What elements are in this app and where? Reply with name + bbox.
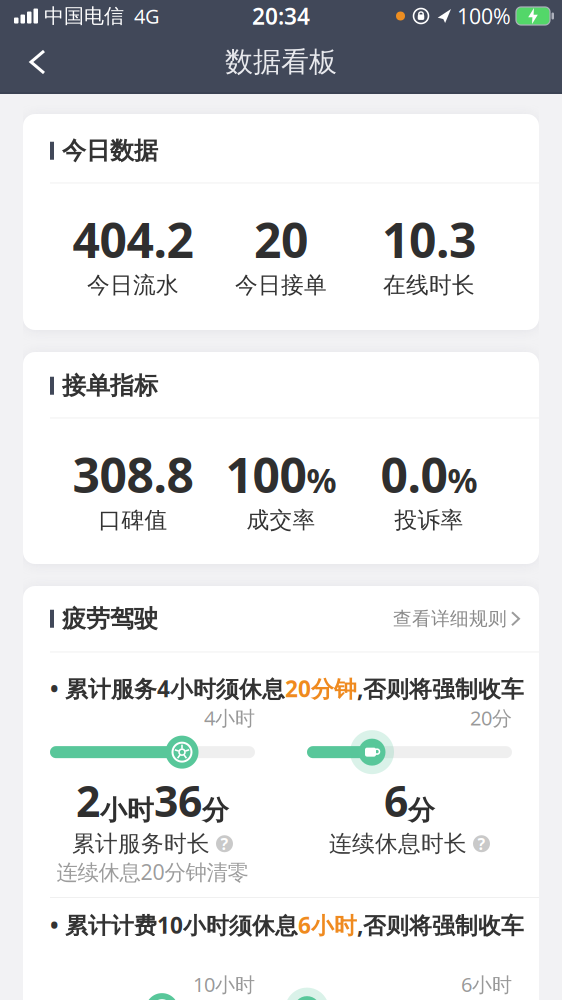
staticText: ?: [477, 833, 485, 854]
staticText: ,否则将强制收车: [357, 910, 524, 940]
staticText: 口碑值: [98, 506, 167, 534]
staticText: • 累计服务4小时须休息: [50, 673, 285, 704]
staticText: 成交率: [246, 506, 315, 534]
staticText: 4G: [134, 3, 160, 29]
staticText: 100%: [225, 442, 336, 506]
button[interactable]: 接单指标: [23, 352, 539, 564]
staticText: ,否则将强制收车: [357, 673, 524, 704]
staticText: 6小时: [461, 971, 512, 998]
staticText: 20:34: [252, 1, 310, 31]
staticText: 20分: [470, 705, 512, 731]
staticText: 中国电信: [44, 4, 124, 28]
staticText: 查看详细规则: [393, 607, 507, 630]
staticText: 20分钟: [285, 673, 357, 704]
staticText: 10小时: [193, 971, 255, 998]
staticText: 404.2: [72, 207, 193, 271]
staticText: 今日接单: [235, 271, 327, 299]
staticText: 308.8: [72, 442, 193, 506]
staticText: 累计服务时长: [72, 830, 210, 858]
staticText: ?: [220, 833, 228, 854]
button[interactable]: ?: [473, 833, 490, 854]
staticText: 4小时: [204, 705, 255, 731]
staticText: 今日流水: [87, 271, 179, 299]
staticText: 在线时长: [383, 271, 475, 299]
staticText: 投诉率: [394, 506, 463, 534]
staticText: • 累计计费10小时须休息: [50, 910, 298, 940]
staticText: 接单指标: [62, 371, 158, 400]
button[interactable]: 今日数据: [23, 114, 539, 330]
staticText: 连续休息时长: [329, 830, 467, 858]
staticText: 20: [254, 207, 308, 271]
staticText: 6分: [384, 772, 435, 829]
staticText: 100%: [457, 2, 511, 30]
staticText: 2小时36分: [76, 772, 229, 829]
staticText: 连续休息20分钟清零: [56, 858, 248, 886]
staticText: 数据看板: [225, 45, 337, 79]
staticText: 10.3: [382, 207, 476, 271]
button[interactable]: 查看详细规则: [393, 607, 519, 630]
staticText: 6小时: [298, 910, 357, 940]
staticText: 疲劳驾驶: [62, 604, 158, 633]
button[interactable]: ?: [216, 833, 233, 854]
staticText: 0.0%: [380, 442, 477, 506]
button[interactable]: [0, 51, 44, 73]
staticText: 今日数据: [62, 136, 158, 165]
